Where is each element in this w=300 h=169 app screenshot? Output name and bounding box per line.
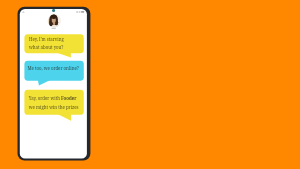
button[interactable] <box>0 0 300 169</box>
